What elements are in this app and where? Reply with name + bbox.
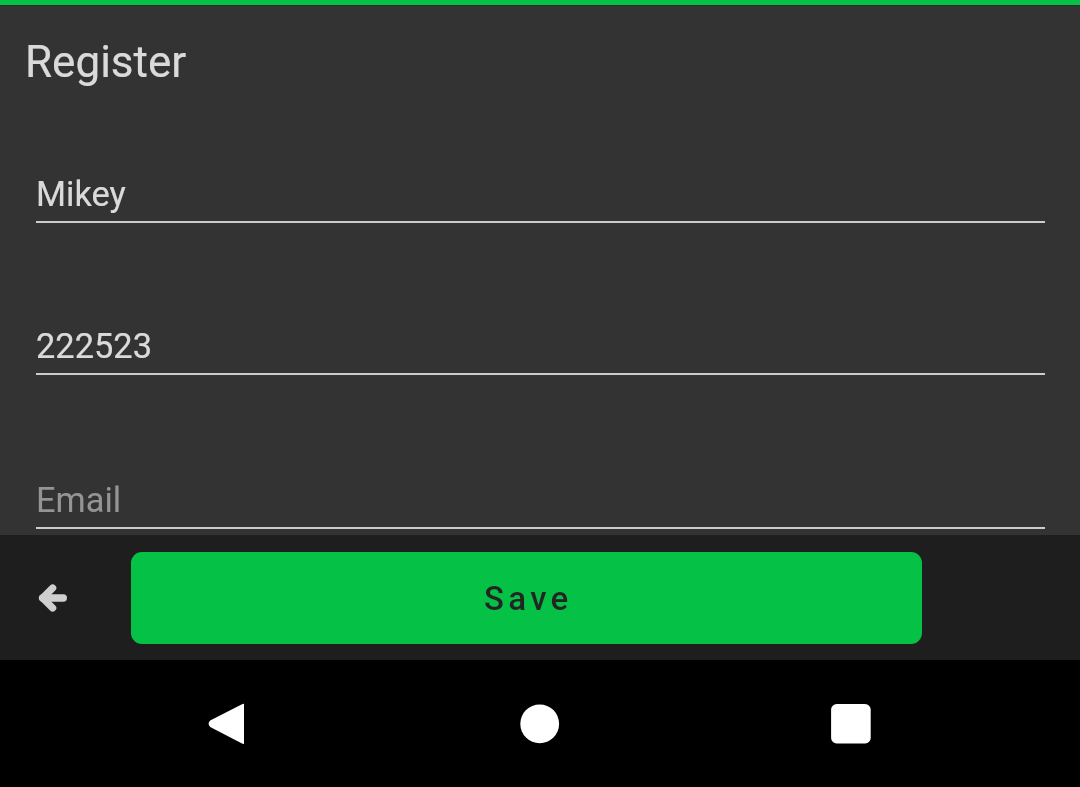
button[interactable]: Back [180, 660, 272, 787]
button[interactable]: 222523 [36, 315, 1045, 376]
button[interactable]: Email [36, 469, 1045, 530]
button[interactable]: Mikey [36, 163, 1045, 224]
button[interactable]: Save [131, 552, 922, 644]
button[interactable]: Back [18, 563, 88, 633]
staticText: 222523 [36, 326, 152, 366]
staticText: Email [36, 480, 122, 520]
staticText: Register [25, 36, 187, 88]
staticText: Mikey [36, 174, 126, 214]
button[interactable]: Home [494, 660, 586, 787]
button[interactable]: Recent apps [805, 660, 897, 787]
staticText: Save [484, 579, 573, 618]
